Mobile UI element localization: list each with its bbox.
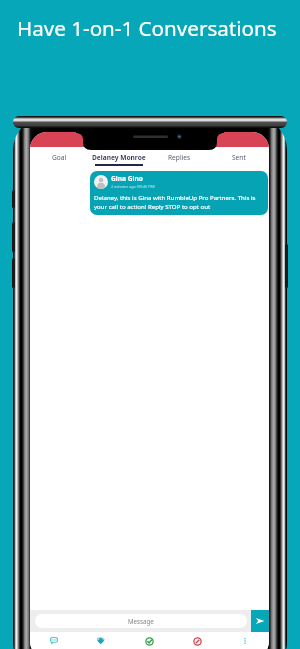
staticText: Have 1-on-1 Conversations — [17, 14, 277, 42]
button[interactable]: Conversations — [30, 632, 77, 649]
button[interactable]: Tags — [77, 632, 125, 649]
button[interactable]: Mark done — [125, 632, 173, 649]
staticText: Gina Gino — [111, 174, 143, 183]
button[interactable]: More options — [221, 632, 269, 649]
button[interactable]: Send — [251, 610, 269, 632]
button[interactable]: Replies — [149, 153, 209, 166]
button[interactable]: Block — [173, 632, 221, 649]
staticText: Sent — [232, 153, 246, 162]
staticText: Message — [128, 617, 154, 625]
button[interactable]: Goal — [30, 153, 89, 166]
button[interactable]: Message — [35, 614, 247, 628]
button[interactable]: Sent — [209, 153, 269, 166]
button[interactable]: Gina Gino — [90, 171, 268, 215]
staticText: Delaney, this is Gina with RumbleUp Pro … — [94, 193, 263, 211]
staticText: Goal — [52, 153, 67, 162]
button[interactable]: Delaney Monroe — [89, 153, 149, 166]
staticText: Replies — [168, 153, 191, 162]
staticText: Delaney Monroe — [92, 153, 146, 162]
staticText: 2 minutes ago (09:40 PM) — [111, 184, 155, 189]
